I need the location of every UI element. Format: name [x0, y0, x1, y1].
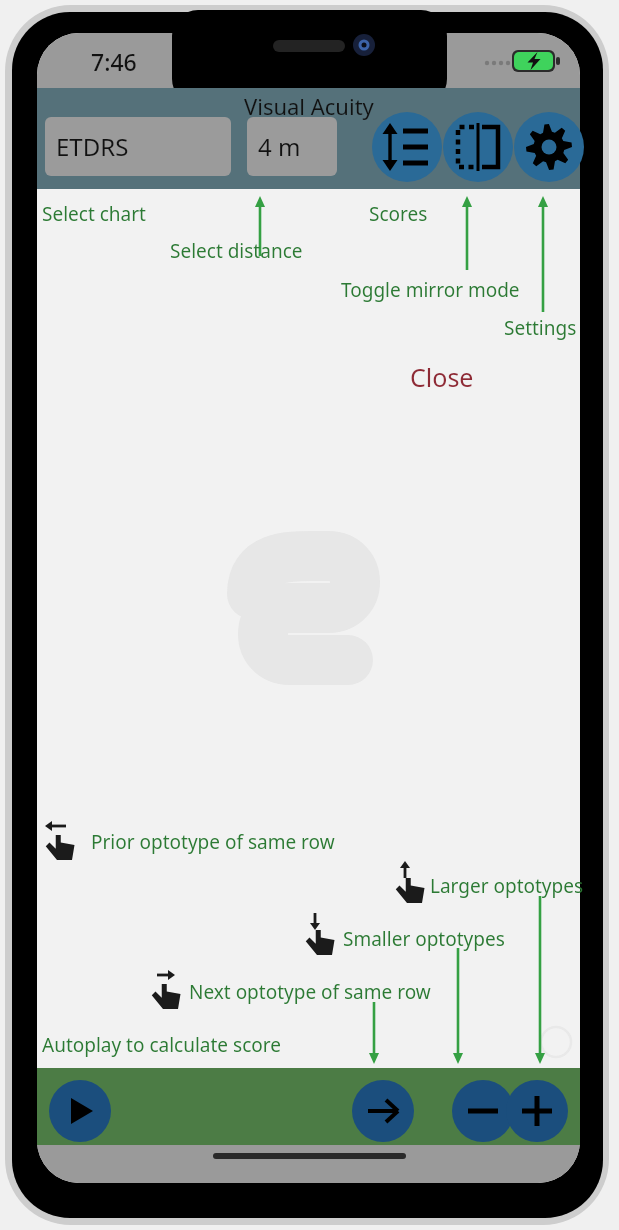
staticText: Scores: [369, 201, 428, 227]
button[interactable]: Play autoplay: [49, 1080, 111, 1142]
staticText: 4 m: [258, 130, 301, 163]
button[interactable]: Scores: [372, 112, 442, 182]
staticText: Visual Acuity: [244, 91, 374, 121]
button[interactable]: Settings: [514, 112, 584, 182]
staticText: Next optotype of same row: [189, 979, 431, 1005]
button[interactable]: 4 m: [247, 117, 337, 176]
staticText: Autoplay to calculate score: [42, 1032, 281, 1058]
staticText: Settings: [504, 315, 577, 341]
staticText: ETDRS: [56, 130, 129, 163]
button[interactable]: Toggle mirror mode: [443, 112, 513, 182]
staticText: Larger optotypes: [430, 873, 584, 899]
staticText: Select chart: [42, 201, 146, 227]
button[interactable]: Larger optotypes: [506, 1080, 568, 1142]
staticText: Smaller optotypes: [343, 926, 505, 952]
staticText: 7:46: [91, 46, 137, 77]
staticText: Select distance: [170, 238, 303, 264]
staticText: Close: [410, 360, 474, 394]
staticText: Toggle mirror mode: [341, 277, 520, 303]
button[interactable]: Close: [410, 360, 474, 394]
button[interactable]: ETDRS: [45, 117, 231, 176]
staticText: Prior optotype of same row: [91, 829, 335, 855]
button[interactable]: Smaller optotypes: [452, 1080, 514, 1142]
button[interactable]: Next optotype: [352, 1080, 414, 1142]
